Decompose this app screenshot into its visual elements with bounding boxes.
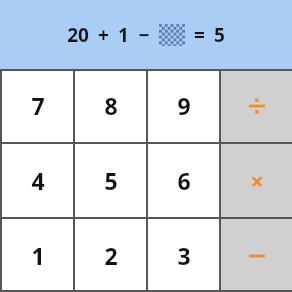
staticText: 1	[118, 22, 129, 48]
button[interactable]: 6	[148, 144, 219, 217]
staticText: 4	[31, 165, 45, 196]
button[interactable]: 9	[148, 69, 219, 142]
button[interactable]: 2	[75, 219, 146, 292]
button[interactable]: Subtract	[221, 219, 292, 292]
button[interactable]: Missing number	[159, 24, 185, 46]
staticText: 5	[104, 165, 118, 196]
staticText: +	[98, 22, 109, 48]
staticText: ×	[250, 165, 264, 196]
button[interactable]: Multiply	[221, 144, 292, 217]
button[interactable]: Divide	[221, 69, 292, 142]
staticText: 8	[104, 90, 118, 121]
button[interactable]: 1	[2, 219, 73, 292]
button[interactable]: 3	[148, 219, 219, 292]
staticText: 1	[31, 240, 45, 271]
staticText: 9	[177, 90, 191, 121]
staticText: 5	[214, 22, 225, 48]
staticText: =	[194, 22, 205, 48]
staticText: 2	[104, 240, 118, 271]
staticText: 6	[177, 165, 191, 196]
staticText: 3	[177, 240, 191, 271]
button[interactable]: 7	[2, 69, 73, 142]
staticText: 20	[67, 22, 89, 48]
staticText: 7	[31, 90, 45, 121]
staticText: −	[138, 22, 150, 48]
button[interactable]: 4	[2, 144, 73, 217]
button[interactable]: 8	[75, 69, 146, 142]
button[interactable]: 5	[75, 144, 146, 217]
